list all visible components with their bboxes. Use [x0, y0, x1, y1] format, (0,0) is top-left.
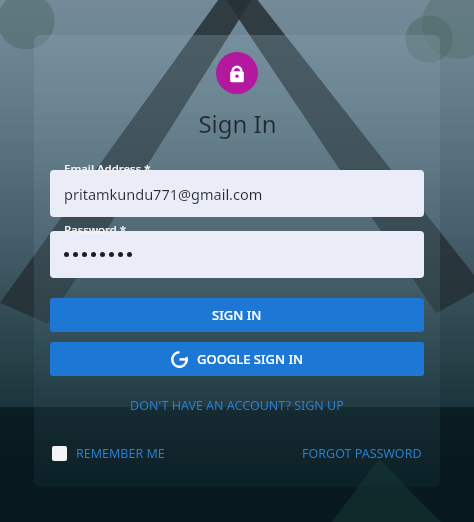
button[interactable]: GOOGLE SIGN IN — [50, 342, 424, 376]
button[interactable] — [50, 231, 424, 278]
staticText: REMEMBER ME — [76, 445, 165, 462]
button[interactable]: pritamkundu771@gmail.com — [50, 170, 424, 217]
staticText: Sign In — [198, 107, 277, 140]
button[interactable]: DON'T HAVE AN ACCOUNT? SIGN UP — [124, 393, 350, 418]
staticText: pritamkundu771@gmail.com — [64, 184, 263, 204]
staticText: Email Address * — [64, 161, 151, 177]
button[interactable]: FORGOT PASSWORD — [300, 441, 424, 466]
staticText: FORGOT PASSWORD — [302, 445, 422, 462]
staticText: SIGN IN — [212, 306, 262, 324]
staticText: Password * — [64, 222, 127, 238]
button[interactable]: SIGN IN — [50, 298, 424, 332]
staticText: GOOGLE SIGN IN — [197, 350, 304, 368]
staticText: DON'T HAVE AN ACCOUNT? SIGN UP — [130, 397, 344, 414]
button[interactable]: REMEMBER ME — [50, 441, 167, 466]
